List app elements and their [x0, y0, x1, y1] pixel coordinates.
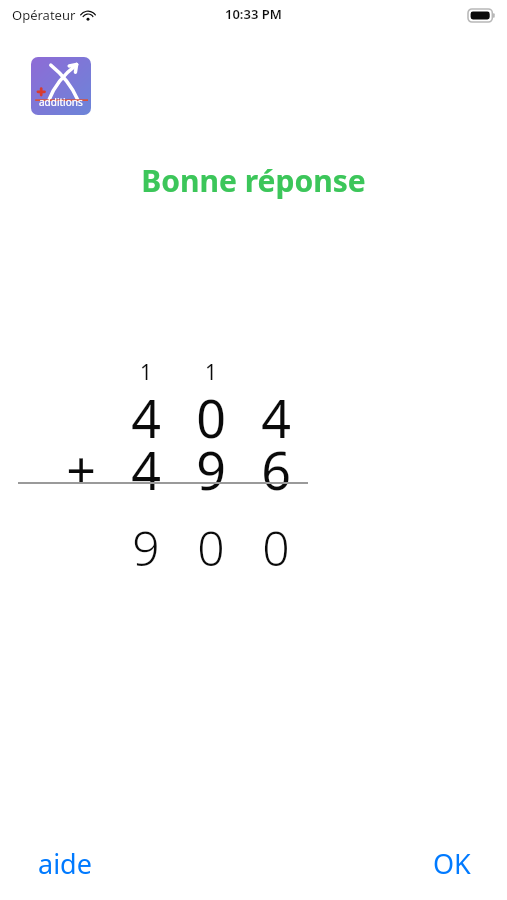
staticText: 0: [176, 382, 246, 453]
staticText: 1: [176, 358, 246, 387]
staticText: 0: [176, 515, 246, 580]
staticText: Opérateur: [12, 6, 76, 24]
staticText: aide: [38, 845, 92, 882]
staticText: 4: [241, 382, 311, 453]
staticText: 1: [111, 358, 181, 387]
staticText: +: [46, 434, 116, 505]
button[interactable]: aide: [24, 837, 106, 890]
staticText: Bonne réponse: [0, 160, 507, 201]
staticText: 0: [241, 515, 311, 580]
staticText: 9: [111, 515, 181, 580]
staticText: 4: [111, 382, 181, 453]
staticText: OK: [433, 845, 471, 882]
staticText: 9: [176, 434, 246, 505]
staticText: 10:33 PM: [225, 5, 282, 23]
staticText: additions: [39, 95, 83, 109]
staticText: 4: [111, 434, 181, 505]
button[interactable]: OK: [419, 837, 485, 890]
button[interactable]: additions app icon: [31, 57, 91, 115]
staticText: 6: [241, 434, 311, 505]
